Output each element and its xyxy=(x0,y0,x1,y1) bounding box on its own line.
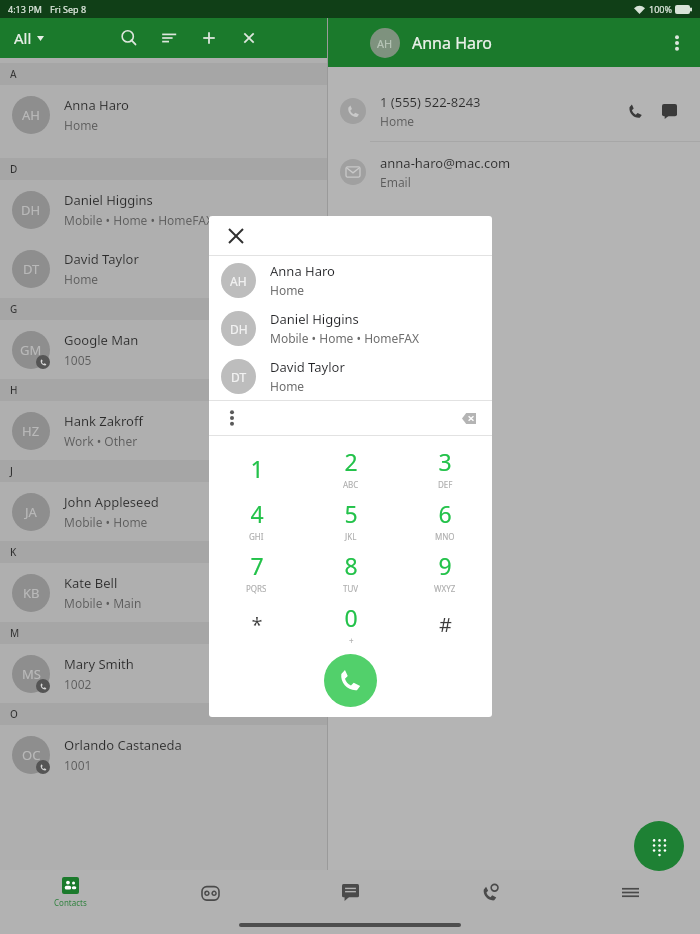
staticText: Anna Haro xyxy=(64,96,129,114)
button[interactable]: Add xyxy=(189,18,229,58)
button[interactable]: OC xyxy=(0,725,327,784)
staticText: 2 xyxy=(344,446,358,477)
button[interactable]: KB xyxy=(0,563,327,622)
button[interactable]: DH xyxy=(209,304,492,352)
staticText: K xyxy=(10,545,17,559)
button[interactable]: 1 xyxy=(209,442,304,494)
button[interactable]: Recents xyxy=(420,870,560,915)
button[interactable]: anna-haro@mac.com xyxy=(328,142,700,202)
staticText: Mobile • Home • HomeFAX xyxy=(270,330,419,346)
button[interactable]: 0 xyxy=(304,598,398,650)
staticText: GM xyxy=(20,341,42,359)
staticText: Mary Smith xyxy=(64,655,134,673)
button[interactable]: * xyxy=(209,598,304,650)
staticText: Fri Sep 8 xyxy=(50,3,87,15)
staticText: Anna Haro xyxy=(270,262,335,280)
staticText: Orlando Castaneda xyxy=(64,736,182,754)
staticText: All xyxy=(14,28,32,48)
staticText: Home xyxy=(270,378,305,394)
button[interactable]: Sort xyxy=(149,18,189,58)
staticText: HZ xyxy=(22,422,40,440)
button[interactable]: HZ xyxy=(0,401,327,460)
button[interactable]: 2 xyxy=(304,442,398,494)
staticText: David Taylor xyxy=(270,358,345,376)
staticText: + xyxy=(349,635,354,646)
staticText: anna-haro@mac.com xyxy=(380,154,511,172)
staticText: Mobile • Home xyxy=(64,514,148,530)
button[interactable]: 7 xyxy=(209,546,304,598)
button[interactable]: DH xyxy=(0,180,327,239)
staticText: GHI xyxy=(249,531,264,542)
staticText: Home xyxy=(64,271,99,287)
button[interactable]: 5 xyxy=(304,494,398,546)
staticText: Anna Haro xyxy=(412,32,492,54)
staticText: David Taylor xyxy=(64,250,139,268)
button[interactable]: Message xyxy=(652,94,686,128)
button[interactable]: Dialpad xyxy=(634,821,684,871)
staticText: H xyxy=(10,383,18,397)
staticText: AH xyxy=(22,106,40,124)
staticText: # xyxy=(439,611,452,638)
staticText: ABC xyxy=(343,479,359,490)
button[interactable]: 1 (555) 522-8243 xyxy=(328,81,700,141)
staticText: O xyxy=(10,707,18,721)
staticText: 0 xyxy=(344,602,358,633)
staticText: 1005 xyxy=(64,352,92,368)
button[interactable]: Close dialpad xyxy=(217,217,255,255)
staticText: DT xyxy=(231,369,247,385)
staticText: 100% xyxy=(649,3,672,15)
button[interactable]: Voicemail xyxy=(140,870,280,915)
staticText: Kate Bell xyxy=(64,574,118,592)
staticText: DH xyxy=(21,201,41,219)
staticText: 1002 xyxy=(64,676,92,692)
button[interactable]: DT xyxy=(0,239,327,298)
button[interactable]: Call xyxy=(324,654,377,707)
staticText: DEF xyxy=(438,479,453,490)
button[interactable]: 8 xyxy=(304,546,398,598)
button[interactable]: JA xyxy=(0,482,327,541)
staticText: 4 xyxy=(250,498,264,529)
staticText: Work • Other xyxy=(64,433,138,449)
button[interactable]: Delete xyxy=(456,405,482,431)
button[interactable]: 4 xyxy=(209,494,304,546)
staticText: Contacts xyxy=(54,897,87,908)
button[interactable]: GM xyxy=(0,320,327,379)
button[interactable]: More options xyxy=(660,26,694,60)
staticText: KB xyxy=(23,584,40,602)
button[interactable]: Messages xyxy=(280,870,420,915)
button[interactable]: 9 xyxy=(398,546,492,598)
staticText: 1001 xyxy=(64,757,92,773)
staticText: MNO xyxy=(435,531,455,542)
staticText: WXYZ xyxy=(434,583,456,594)
staticText: Email xyxy=(380,174,411,190)
button[interactable]: Contacts xyxy=(0,870,140,915)
staticText: Daniel Higgins xyxy=(64,191,153,209)
staticText: * xyxy=(251,611,263,638)
button[interactable]: Call xyxy=(618,94,652,128)
button[interactable]: All xyxy=(0,28,52,48)
button[interactable]: 6 xyxy=(398,494,492,546)
button[interactable]: Menu xyxy=(560,870,700,915)
button[interactable]: MS xyxy=(0,644,327,703)
staticText: M xyxy=(10,626,20,640)
button[interactable]: 3 xyxy=(398,442,492,494)
button[interactable]: Close xyxy=(229,18,269,58)
staticText: 8 xyxy=(344,550,358,581)
staticText: D xyxy=(10,162,18,176)
button[interactable]: Search xyxy=(109,18,149,58)
staticText: John Appleseed xyxy=(64,493,159,511)
button[interactable]: # xyxy=(398,598,492,650)
button[interactable]: AH xyxy=(0,85,327,144)
staticText: JKL xyxy=(345,531,357,542)
staticText: Home xyxy=(270,282,305,298)
staticText: DH xyxy=(230,321,248,337)
button[interactable]: DT xyxy=(209,352,492,400)
button[interactable]: AH xyxy=(209,256,492,304)
staticText: TUV xyxy=(343,583,359,594)
button[interactable]: More options xyxy=(219,405,245,431)
staticText: Mobile • Home • HomeFAX xyxy=(64,212,213,228)
staticText: 7 xyxy=(250,550,264,581)
staticText: Daniel Higgins xyxy=(270,310,359,328)
staticText: 9 xyxy=(438,550,452,581)
staticText: OC xyxy=(22,746,41,764)
